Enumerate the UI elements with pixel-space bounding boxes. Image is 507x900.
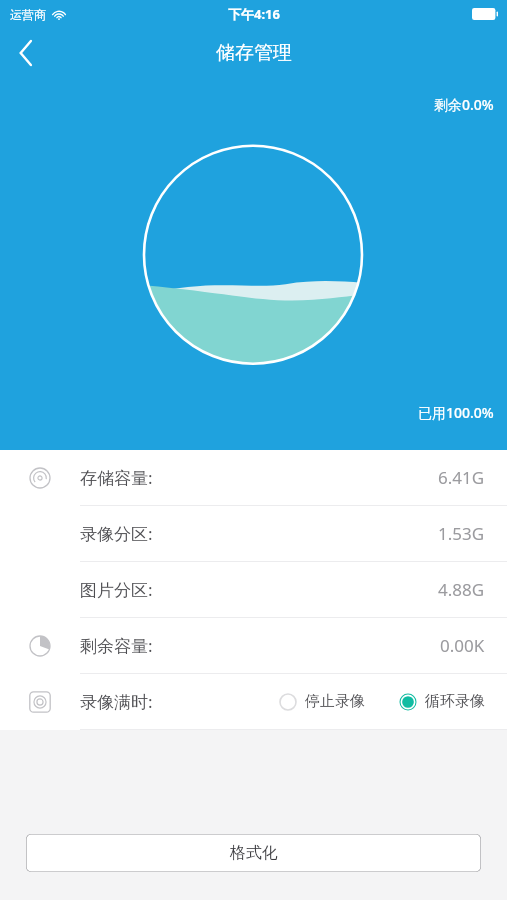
staticText: 储存管理	[216, 41, 292, 65]
staticText: 录像分区:	[80, 522, 153, 545]
staticText: 6.41G	[438, 466, 485, 489]
staticText: 图片分区:	[80, 578, 153, 601]
staticText: 存储容量:	[80, 466, 153, 489]
button[interactable]: 格式化	[26, 834, 481, 872]
staticText: 格式化	[230, 843, 278, 863]
staticText: 运营商	[10, 7, 46, 22]
staticText: 已用100.0%	[418, 403, 494, 422]
button[interactable]: 存储容量:	[0, 450, 507, 506]
staticText: 0.00K	[440, 634, 485, 657]
staticText: 停止录像	[305, 692, 365, 711]
staticText: 剩余0.0%	[434, 95, 494, 114]
staticText: 1.53G	[438, 522, 485, 545]
button[interactable]: 循环录像	[395, 692, 489, 711]
staticText: 4.88G	[438, 578, 485, 601]
button[interactable]: 停止录像	[275, 692, 369, 711]
button[interactable]: 录像分区:	[0, 506, 507, 562]
button[interactable]: 图片分区:	[0, 562, 507, 618]
button[interactable]: 剩余容量:	[0, 618, 507, 674]
staticText: 录像满时:	[80, 690, 153, 713]
button[interactable]: Back	[0, 28, 52, 78]
staticText: 循环录像	[425, 692, 485, 711]
staticText: 剩余容量:	[80, 634, 153, 657]
staticText: 下午4:16	[228, 5, 280, 23]
